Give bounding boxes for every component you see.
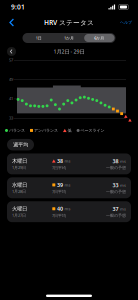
- staticText: 1月2日 - 29日: [53, 48, 84, 55]
- staticText: ベースライン: [80, 128, 105, 133]
- staticText: アンバランス: [33, 128, 58, 133]
- staticText: 火曜日: [12, 205, 27, 212]
- staticText: 低: [67, 128, 72, 133]
- staticText: ms: [65, 158, 71, 164]
- staticText: 38: [112, 158, 118, 165]
- staticText: 7日平均: [52, 165, 66, 170]
- staticText: HRV ステータス: [44, 18, 94, 27]
- staticText: 37: [112, 205, 118, 213]
- button[interactable]: 木曜日: [7, 153, 131, 174]
- staticText: 1月27日: [12, 213, 26, 218]
- staticText: ms: [65, 182, 71, 187]
- staticText: 6か月: [94, 35, 104, 41]
- staticText: 1月28日: [12, 189, 26, 194]
- staticText: 33: [112, 182, 118, 189]
- staticText: 一般の予想: [106, 189, 126, 194]
- staticText: 一般の予想: [106, 213, 126, 218]
- staticText: 1月29日: [12, 165, 26, 170]
- staticText: 木曜日: [12, 158, 27, 164]
- staticText: ms: [120, 206, 126, 212]
- button[interactable]: 前の期間: [7, 47, 16, 56]
- staticText: バランス: [8, 128, 25, 133]
- staticText: 1か月: [64, 35, 74, 41]
- button[interactable]: ヘルプ: [119, 20, 133, 25]
- button[interactable]: 火曜日: [7, 201, 131, 222]
- button[interactable]: 水曜日: [7, 177, 131, 198]
- button[interactable]: 週平均: [7, 139, 34, 150]
- staticText: ms: [65, 206, 71, 211]
- staticText: ヘルプ: [120, 20, 132, 25]
- staticText: 一般の予想: [106, 165, 126, 170]
- staticText: 週平均: [13, 141, 28, 148]
- staticText: ms: [120, 182, 126, 188]
- staticText: 41: [9, 96, 13, 101]
- staticText: 40: [57, 205, 63, 212]
- staticText: 7日平均: [52, 189, 66, 194]
- staticText: 水曜日: [12, 182, 27, 188]
- staticText: 49: [9, 77, 13, 82]
- staticText: 9:01: [11, 3, 25, 11]
- staticText: 57: [9, 57, 13, 62]
- staticText: 39: [57, 181, 63, 188]
- staticText: 38: [57, 157, 63, 165]
- staticText: ms: [120, 158, 126, 164]
- staticText: 1日: [36, 35, 42, 41]
- button[interactable]: 戻る: [5, 16, 19, 29]
- button[interactable]: 1日: [23, 34, 54, 42]
- button[interactable]: 1か月: [54, 34, 84, 42]
- staticText: 33: [9, 115, 13, 120]
- staticText: 7日平均: [52, 213, 66, 218]
- button[interactable]: 6か月: [84, 34, 114, 42]
